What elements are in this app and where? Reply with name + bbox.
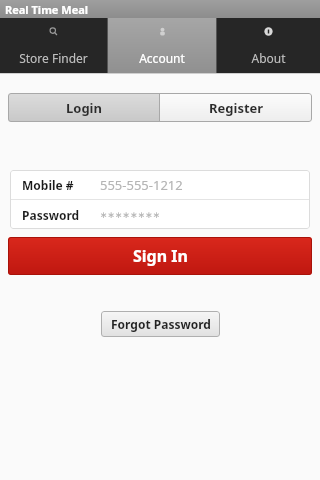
staticText: Forgot Password bbox=[111, 316, 211, 332]
button[interactable]: Store Finder bbox=[0, 18, 107, 73]
staticText: Login bbox=[66, 99, 102, 117]
staticText: About bbox=[251, 50, 286, 66]
staticText: Account bbox=[139, 50, 185, 66]
staticText: Real Time Meal bbox=[5, 2, 89, 17]
button[interactable]: Password bbox=[10, 200, 310, 229]
button[interactable]: Register bbox=[160, 93, 312, 122]
button[interactable]: Mobile # bbox=[10, 170, 310, 199]
button[interactable]: About bbox=[217, 18, 320, 73]
staticText: ∗∗∗∗∗∗∗∗ bbox=[100, 210, 161, 220]
button[interactable]: Account bbox=[108, 18, 216, 73]
button[interactable]: Sign In bbox=[8, 237, 312, 275]
button[interactable]: Forgot Password bbox=[101, 311, 220, 337]
staticText: Password bbox=[22, 207, 100, 223]
staticText: Sign In bbox=[133, 245, 188, 267]
staticText: Register bbox=[209, 99, 264, 117]
staticText: 555-555-1212 bbox=[100, 176, 183, 194]
button[interactable]: Login bbox=[8, 93, 159, 122]
staticText: Store Finder bbox=[19, 50, 88, 66]
staticText: Mobile # bbox=[22, 177, 100, 193]
